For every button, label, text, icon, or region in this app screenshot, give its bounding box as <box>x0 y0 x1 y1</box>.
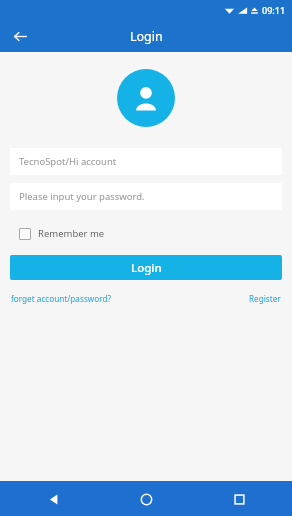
button[interactable]: Register <box>249 291 281 306</box>
staticText: Register <box>249 293 281 304</box>
button[interactable]: Back <box>38 484 68 514</box>
staticText: TecnoSpot/Hi account <box>19 155 117 168</box>
staticText: forget account/password? <box>11 293 112 304</box>
staticText: Login <box>130 28 163 45</box>
button[interactable]: Account avatar <box>117 69 175 127</box>
staticText: Remember me <box>38 227 105 240</box>
button[interactable]: Recent apps <box>224 484 254 514</box>
button[interactable]: Remember me <box>17 224 107 243</box>
staticText: 09:11 <box>262 4 286 16</box>
button[interactable]: Please input your password. <box>10 183 282 210</box>
button[interactable]: TecnoSpot/Hi account <box>10 148 282 175</box>
button[interactable]: Home <box>131 484 161 514</box>
staticText: Please input your password. <box>19 190 145 203</box>
button[interactable]: Back <box>8 24 32 48</box>
staticText: Login <box>131 260 162 276</box>
button[interactable]: Login <box>10 255 282 280</box>
button[interactable]: forget account/password? <box>11 291 112 306</box>
